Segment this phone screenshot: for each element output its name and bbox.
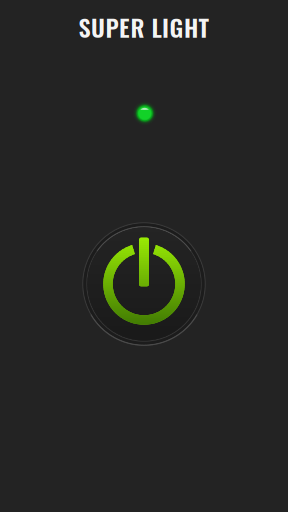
button[interactable]: Turn flashlight on (0, 0, 288, 512)
staticText: SUPER LIGHT (78, 9, 209, 45)
